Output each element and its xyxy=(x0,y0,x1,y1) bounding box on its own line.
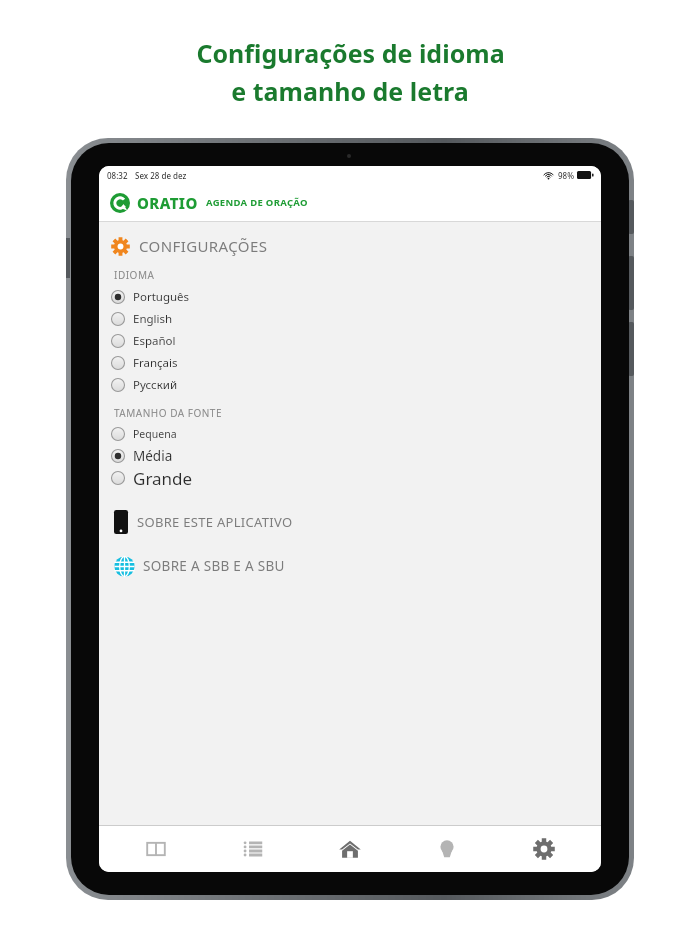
staticText: Pequena xyxy=(133,427,177,441)
staticText: IDIOMA xyxy=(114,268,155,282)
button[interactable]: Grande xyxy=(111,467,601,489)
button[interactable]: Português xyxy=(111,286,601,308)
button[interactable]: Média xyxy=(111,445,601,467)
button[interactable]: Prayer list xyxy=(213,826,293,872)
staticText: SOBRE ESTE APLICATIVO xyxy=(137,513,293,531)
staticText: Sex 28 de dez xyxy=(135,170,187,181)
staticText: English xyxy=(133,311,173,327)
staticText: 08:32 xyxy=(107,170,128,181)
button[interactable]: Русский xyxy=(111,374,601,396)
staticText: Español xyxy=(133,333,176,349)
staticText: TAMANHO DA FONTE xyxy=(114,406,222,420)
button[interactable]: Bible reader xyxy=(116,826,196,872)
button[interactable]: SOBRE A SBB E A SBU xyxy=(111,549,601,583)
button[interactable]: Settings xyxy=(504,826,584,872)
staticText: AGENDA DE ORAÇÃO xyxy=(206,196,308,209)
button[interactable]: Español xyxy=(111,330,601,352)
staticText: SOBRE A SBB E A SBU xyxy=(143,557,285,575)
staticText: Português xyxy=(133,289,190,305)
staticText: 98% xyxy=(558,170,574,181)
button[interactable]: Pequena xyxy=(111,423,601,445)
staticText: Configurações de idioma xyxy=(196,36,505,70)
button[interactable]: Français xyxy=(111,352,601,374)
staticText: ORATIO xyxy=(137,193,198,213)
staticText: e tamanho de letra xyxy=(231,74,469,108)
button[interactable]: English xyxy=(111,308,601,330)
staticText: Grande xyxy=(133,467,193,489)
staticText: Média xyxy=(133,447,173,465)
staticText: Русский xyxy=(133,377,178,393)
staticText: Français xyxy=(133,355,178,371)
button[interactable]: Home xyxy=(310,826,390,872)
button[interactable]: Ideas xyxy=(407,826,487,872)
staticText: CONFIGURAÇÕES xyxy=(139,236,268,256)
button[interactable]: SOBRE ESTE APLICATIVO xyxy=(111,505,601,539)
